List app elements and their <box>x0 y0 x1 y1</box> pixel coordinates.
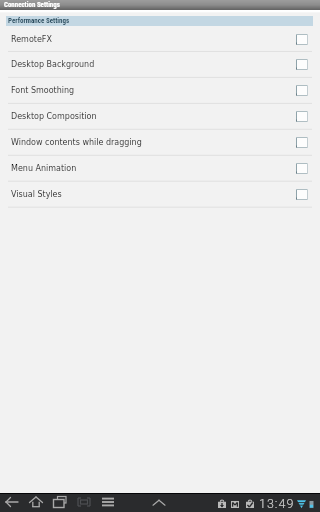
button[interactable]: Menu <box>100 494 116 510</box>
staticText: RemoteFX <box>11 35 319 44</box>
staticText: Desktop Background <box>11 60 319 69</box>
button[interactable]: Visual Styles <box>0 181 320 207</box>
button[interactable]: Back <box>4 494 20 510</box>
button[interactable]: Desktop Composition <box>0 103 320 129</box>
staticText: Visual Styles <box>11 190 319 199</box>
staticText: Window contents while dragging <box>11 138 319 147</box>
staticText: 13:49 <box>259 496 295 511</box>
button[interactable]: Expand status bar <box>151 494 167 510</box>
staticText: Font Smoothing <box>11 86 319 95</box>
button[interactable]: Desktop Background <box>0 51 320 77</box>
staticText: Performance Settings <box>8 17 70 25</box>
staticText: Menu Animation <box>11 164 319 173</box>
button[interactable]: Font Smoothing <box>0 77 320 103</box>
button[interactable]: Window contents while dragging <box>0 129 320 155</box>
button[interactable]: Recent apps <box>52 494 68 510</box>
staticText: Connection Settings <box>4 1 60 9</box>
button[interactable]: Home <box>28 494 44 510</box>
button[interactable]: Menu Animation <box>0 155 320 181</box>
staticText: Desktop Composition <box>11 112 319 121</box>
button[interactable]: RemoteFX <box>0 26 320 52</box>
